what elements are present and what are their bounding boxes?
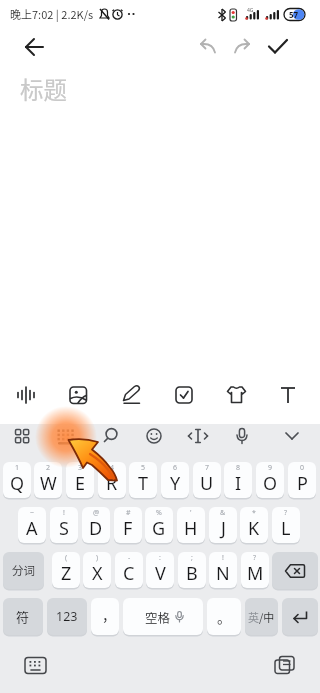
button[interactable]: ( xyxy=(52,552,80,588)
button[interactable] xyxy=(167,377,204,414)
button[interactable]: 7 xyxy=(193,462,221,498)
staticText: S xyxy=(59,516,69,541)
button[interactable]: * xyxy=(240,507,268,543)
button[interactable] xyxy=(114,377,151,414)
button[interactable] xyxy=(14,34,54,62)
button[interactable] xyxy=(92,424,130,450)
staticText: F xyxy=(123,516,133,541)
button[interactable]: ? xyxy=(241,552,269,588)
staticText: % xyxy=(156,508,162,518)
button[interactable]: 6 xyxy=(161,462,189,498)
button[interactable] xyxy=(8,377,45,414)
staticText: 0 xyxy=(300,463,305,473)
staticText: D xyxy=(89,516,103,541)
button[interactable]: & xyxy=(209,507,237,543)
staticText: 空格 xyxy=(145,608,171,626)
staticText: 4 xyxy=(110,463,115,473)
button[interactable] xyxy=(220,377,257,414)
button[interactable]: 5 xyxy=(129,462,157,498)
button[interactable]: 0 xyxy=(288,462,316,498)
button[interactable]: : xyxy=(146,552,174,588)
button[interactable]: # xyxy=(114,507,142,543)
staticText: O xyxy=(263,471,278,496)
button[interactable]: 英 xyxy=(245,598,278,635)
button[interactable] xyxy=(61,377,98,414)
button[interactable]: ? xyxy=(272,507,300,543)
button[interactable]: ' xyxy=(177,507,205,543)
staticText: X xyxy=(92,561,103,586)
staticText: 。 xyxy=(217,607,231,627)
staticText: W xyxy=(40,471,57,496)
button[interactable] xyxy=(272,552,318,589)
staticText: 符 xyxy=(16,607,30,626)
staticText: 1 xyxy=(15,463,20,473)
staticText: E xyxy=(75,471,86,496)
staticText: 6 xyxy=(173,463,178,473)
button[interactable]: 2 xyxy=(34,462,62,498)
staticText: Z xyxy=(61,561,72,586)
staticText: 57 xyxy=(289,9,299,20)
staticText: U xyxy=(200,471,214,496)
button[interactable]: 8 xyxy=(224,462,252,498)
staticText: M xyxy=(247,561,264,586)
staticText: N xyxy=(216,561,230,586)
staticText: P xyxy=(297,471,308,496)
staticText: - xyxy=(128,553,131,563)
button[interactable] xyxy=(180,424,218,450)
staticText: , xyxy=(103,601,108,624)
staticText: 英 xyxy=(248,609,259,625)
button[interactable] xyxy=(16,650,56,682)
button[interactable] xyxy=(194,34,222,62)
button[interactable]: 9 xyxy=(256,462,284,498)
button[interactable]: 符 xyxy=(3,598,43,635)
staticText: T xyxy=(138,471,149,496)
button[interactable] xyxy=(266,650,306,682)
button[interactable]: 分词 xyxy=(3,552,44,589)
button[interactable]: - xyxy=(115,552,143,588)
staticText: 分词 xyxy=(12,562,35,579)
staticText: J xyxy=(221,516,226,541)
button[interactable]: ) xyxy=(83,552,111,588)
staticText: /中 xyxy=(259,609,275,625)
staticText: ? xyxy=(284,508,288,518)
staticText: 5 xyxy=(141,463,146,473)
button[interactable]: ! xyxy=(50,507,78,543)
button[interactable] xyxy=(4,424,42,450)
button[interactable]: @ xyxy=(82,507,110,543)
staticText: C xyxy=(123,561,135,586)
button[interactable] xyxy=(224,424,262,450)
button[interactable] xyxy=(268,424,306,450)
button[interactable] xyxy=(262,34,296,62)
staticText: * xyxy=(252,508,256,518)
button[interactable]: % xyxy=(145,507,173,543)
staticText: V xyxy=(155,561,166,586)
button[interactable]: ; xyxy=(178,552,206,588)
staticText: 9 xyxy=(268,463,273,473)
button[interactable] xyxy=(228,34,256,62)
button[interactable]: ! xyxy=(209,552,237,588)
staticText: 8 xyxy=(236,463,241,473)
staticText: ( xyxy=(65,553,68,563)
staticText: ! xyxy=(222,553,224,563)
staticText: @ xyxy=(93,508,100,518)
button[interactable]: 4 xyxy=(98,462,126,498)
staticText: 7 xyxy=(205,463,210,473)
staticText: 3 xyxy=(78,463,83,473)
staticText: ) xyxy=(96,553,99,563)
staticText: 2 xyxy=(46,463,51,473)
button[interactable]: ~ xyxy=(18,507,46,543)
button[interactable]: 空格 xyxy=(123,598,203,635)
staticText: Y xyxy=(170,471,181,496)
button[interactable]: 1 xyxy=(3,462,31,498)
button[interactable]: , xyxy=(91,598,119,635)
button[interactable]: 123 xyxy=(47,598,87,635)
button[interactable]: 3 xyxy=(66,462,94,498)
staticText: Q xyxy=(10,471,25,496)
button[interactable]: 。 xyxy=(207,598,241,635)
button[interactable] xyxy=(273,377,310,414)
staticText: & xyxy=(220,508,226,518)
button[interactable] xyxy=(282,598,318,635)
button[interactable] xyxy=(136,424,174,450)
button[interactable] xyxy=(48,424,86,450)
staticText: I xyxy=(235,471,242,496)
